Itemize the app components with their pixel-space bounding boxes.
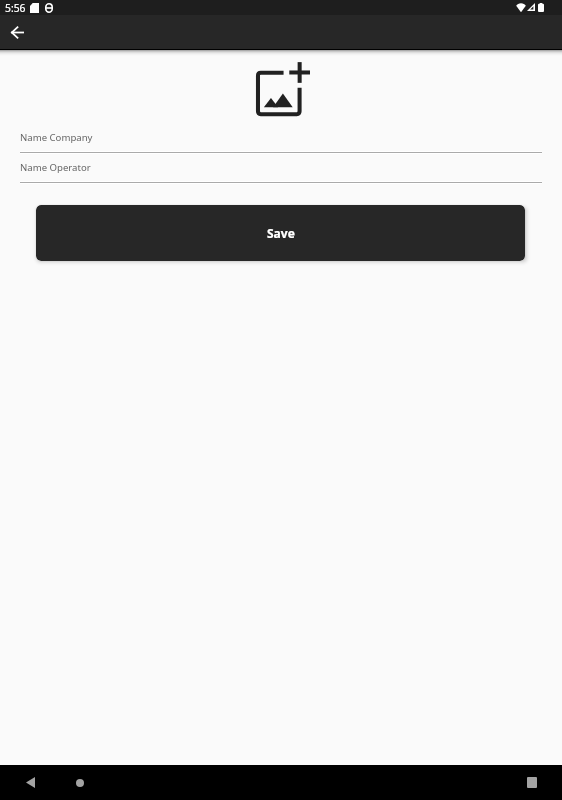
button[interactable]: Save xyxy=(36,205,525,261)
button[interactable]: Add photo xyxy=(254,61,310,117)
button[interactable]: Home xyxy=(58,765,102,800)
button[interactable]: Back xyxy=(8,765,52,800)
staticText: Save xyxy=(267,225,295,241)
staticText: Name Operator xyxy=(20,161,91,174)
button[interactable]: Name Company xyxy=(0,128,562,158)
button[interactable]: Recent apps xyxy=(510,765,554,800)
button[interactable]: Name Operator xyxy=(0,158,562,188)
button[interactable]: Back xyxy=(3,18,31,46)
staticText: 5:56 xyxy=(5,1,26,15)
staticText: Name Company xyxy=(20,131,93,144)
